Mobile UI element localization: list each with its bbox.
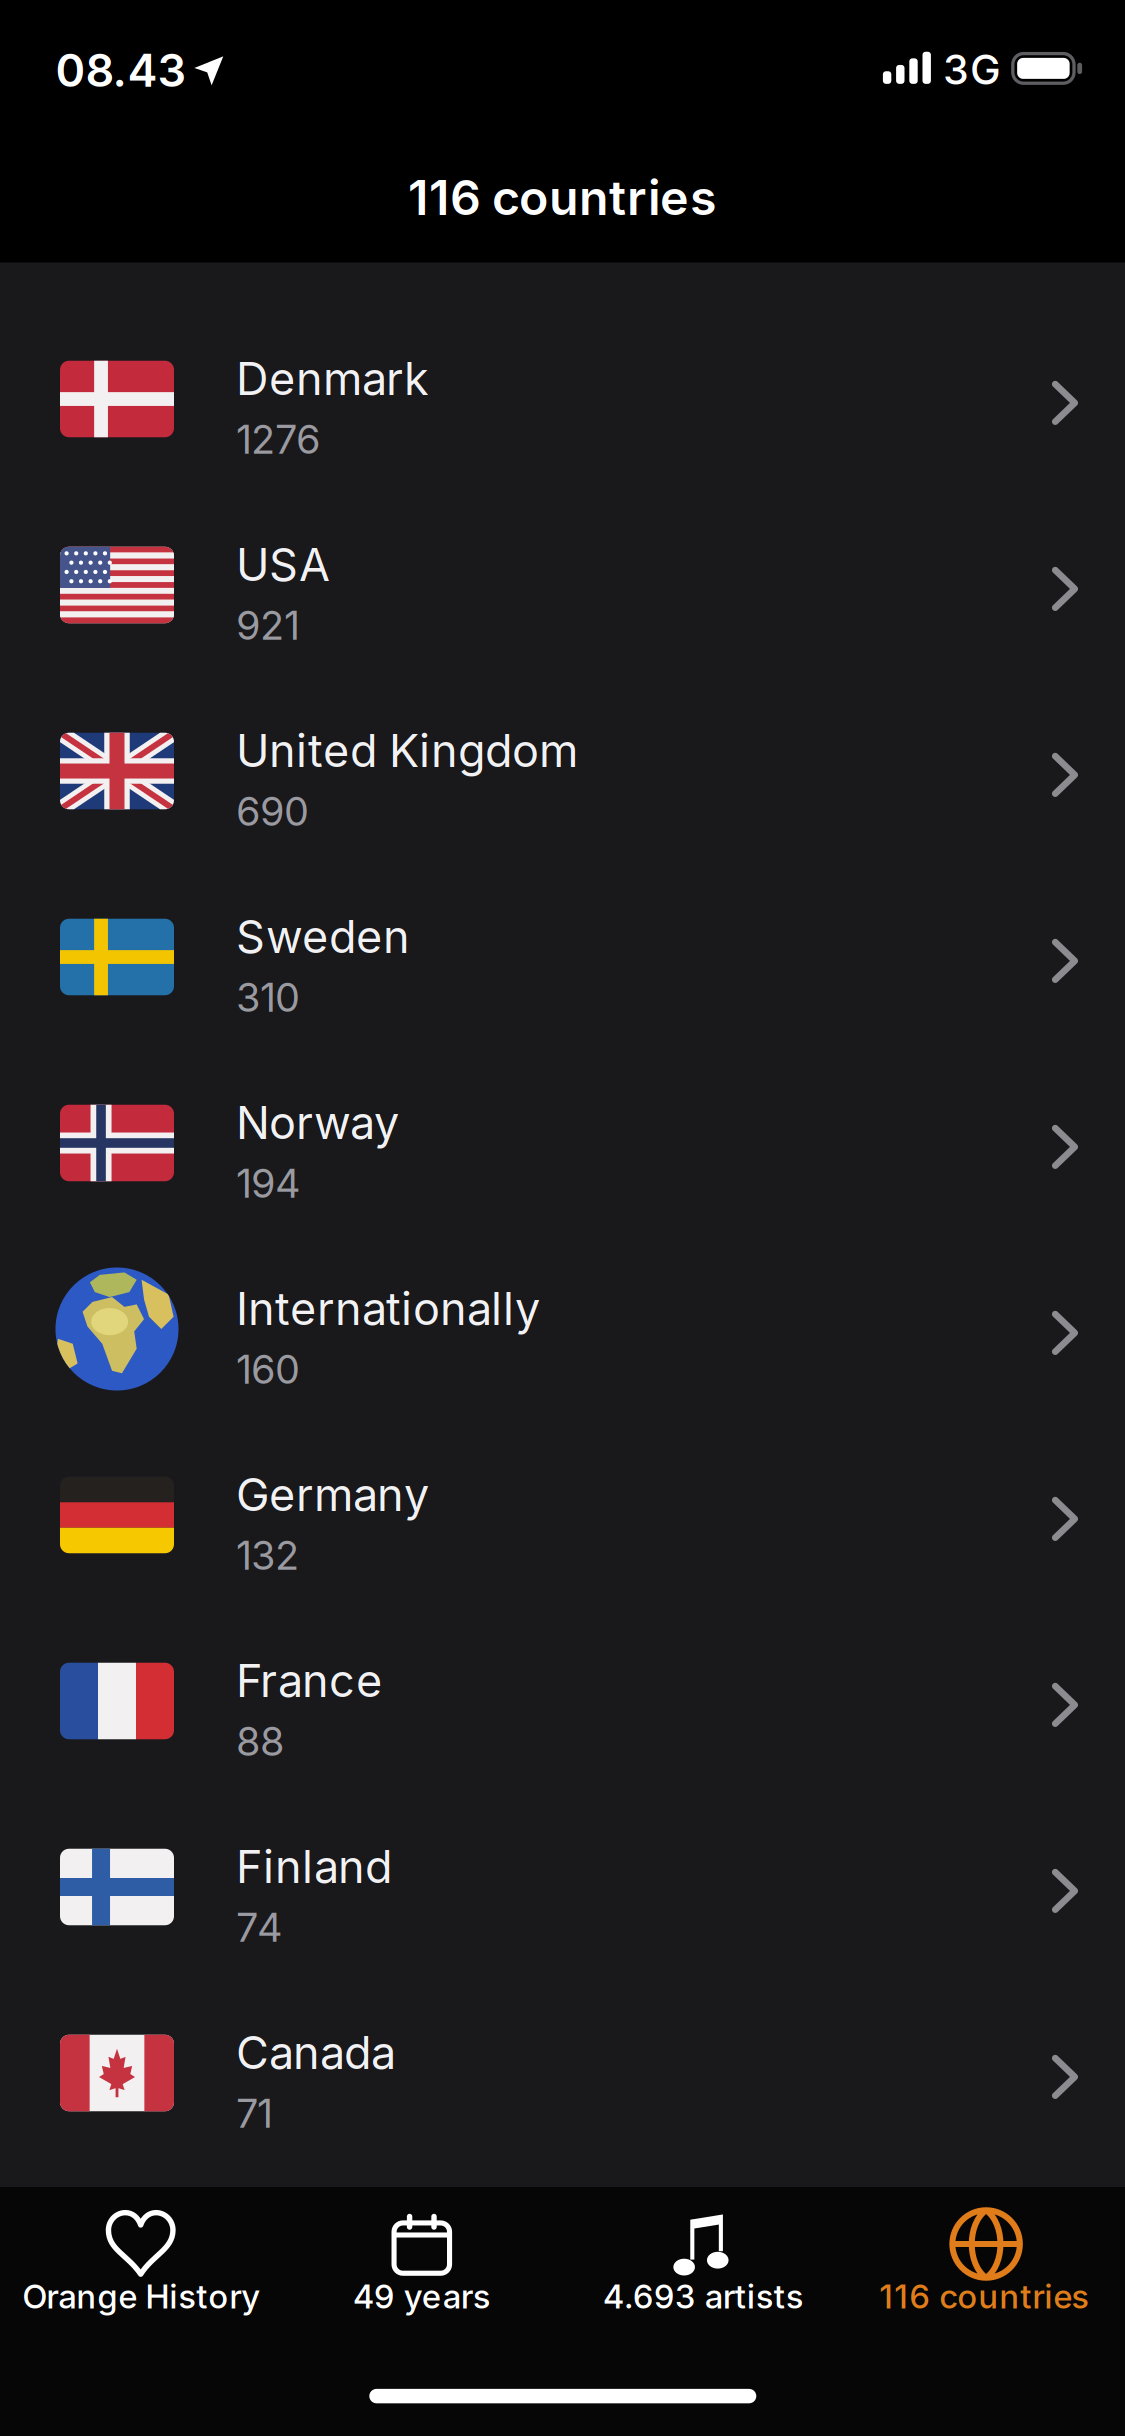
staticText: 132 [454,1322,475,1338]
staticText: Germany [454,1301,518,1319]
